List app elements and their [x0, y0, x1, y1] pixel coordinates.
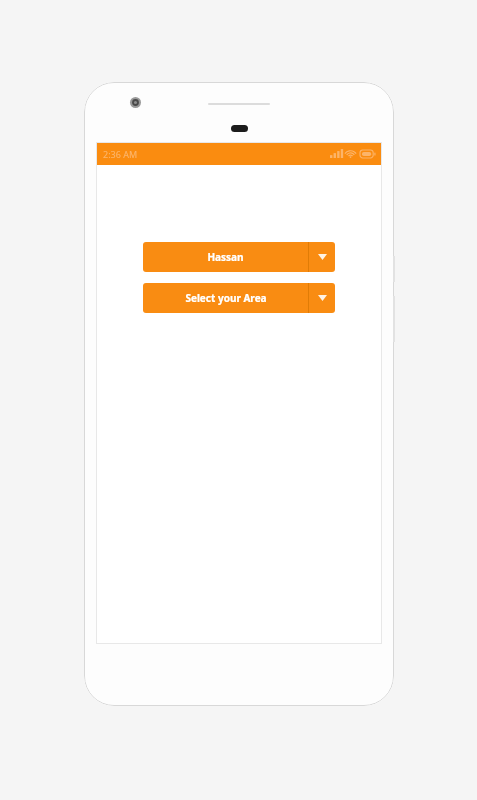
button[interactable]: Hassan [143, 242, 335, 272]
staticText: Hassan [207, 250, 244, 264]
other: Open Hassan dropdown [309, 242, 335, 272]
other: Open Select your Area dropdown [309, 283, 335, 313]
staticText: Select your Area [185, 291, 267, 305]
staticText: 2:36 AM [103, 148, 138, 160]
button[interactable]: Select your Area [143, 283, 335, 313]
